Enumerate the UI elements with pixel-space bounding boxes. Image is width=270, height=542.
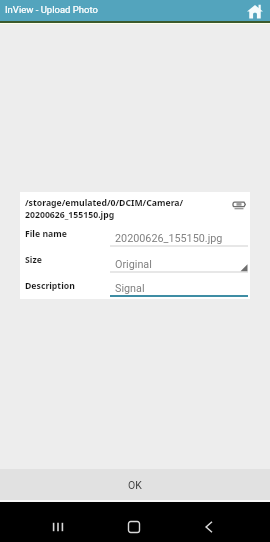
button[interactable]: Home [247,4,263,19]
staticText: /storage/emulated/0/DCIM/Camera/ 2020062… [25,197,184,220]
staticText: File name [25,228,67,240]
staticText: 20200626_155150.jpg [115,232,223,245]
staticText: OK [128,479,142,491]
staticText: Size [25,254,42,266]
button[interactable]: Recent apps [42,511,74,542]
button[interactable]: Original [110,257,248,273]
button[interactable]: Attachment [232,200,246,216]
button[interactable]: Back [193,511,225,542]
button[interactable]: OK [0,469,270,500]
staticText: Signal [115,282,145,295]
button[interactable]: Signal [110,281,248,297]
button[interactable]: 20200626_155150.jpg [110,231,248,247]
staticText: Description [25,280,75,292]
staticText: InView - Upload Photo [5,4,98,15]
staticText: Original [115,258,152,271]
button[interactable]: Home [118,511,150,542]
